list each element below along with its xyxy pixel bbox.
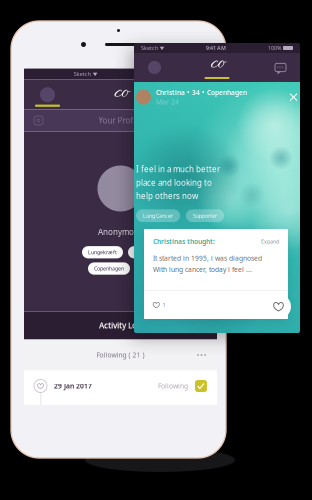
staticText: co [210, 49, 225, 78]
button[interactable]: Messages [275, 62, 286, 73]
button[interactable]: Lungekræft [82, 246, 123, 258]
button[interactable]: 45 [135, 262, 153, 275]
staticText: Lung Cancer [143, 212, 173, 219]
staticText: place and looking to [136, 177, 212, 188]
staticText: Copenhagen [94, 265, 124, 272]
button[interactable]: Lung Cancer [136, 209, 180, 222]
button[interactable]: Copenhagen [88, 262, 130, 275]
staticText: I feel in a much better [136, 164, 220, 174]
staticText: Following [158, 382, 188, 390]
staticText: help others now [136, 191, 198, 201]
staticText: Lungekræft [88, 249, 117, 256]
staticText: Feminin [134, 249, 153, 256]
staticText: Christinas thought: [153, 237, 215, 246]
staticText: 9:41 AM [206, 44, 226, 52]
button[interactable]: Profile [35, 87, 60, 107]
staticText: 1 [162, 301, 165, 309]
staticText: With lung cancer, today i feel ... [153, 265, 252, 274]
staticText: Your Profile [98, 115, 142, 126]
staticText: Activity Log [99, 320, 142, 331]
staticText: 9:41 AM [147, 70, 167, 78]
button[interactable]: Like [153, 296, 165, 314]
button[interactable]: Close [287, 91, 300, 104]
staticText: Anonymous [98, 226, 143, 237]
button[interactable]: 29 Jan 2017 [24, 370, 217, 401]
button[interactable]: More options [191, 348, 212, 362]
button[interactable]: Supporter [186, 209, 224, 222]
staticText: 100% [268, 44, 281, 52]
staticText: Supporter [193, 212, 217, 219]
button[interactable]: Feminin [128, 246, 159, 258]
staticText: Sketch [74, 70, 91, 78]
button[interactable]: Profile [148, 61, 161, 74]
staticText: 45 [141, 265, 147, 272]
staticText: Following ( 21 ) [96, 351, 144, 359]
button[interactable]: Activity Log [24, 311, 217, 339]
staticText: co [114, 77, 129, 107]
button[interactable]: Expand [261, 238, 279, 245]
staticText: Christina • 34 • Copenhagen [156, 88, 247, 97]
staticText: Expand [261, 238, 279, 245]
staticText: It started in 1995, i was diagnosed [153, 254, 262, 263]
staticText: Mar 24 [156, 97, 179, 106]
button[interactable]: Settings [34, 116, 43, 125]
staticText: 29 Jan 2017 [54, 382, 92, 390]
staticText: Sketch [141, 44, 158, 52]
